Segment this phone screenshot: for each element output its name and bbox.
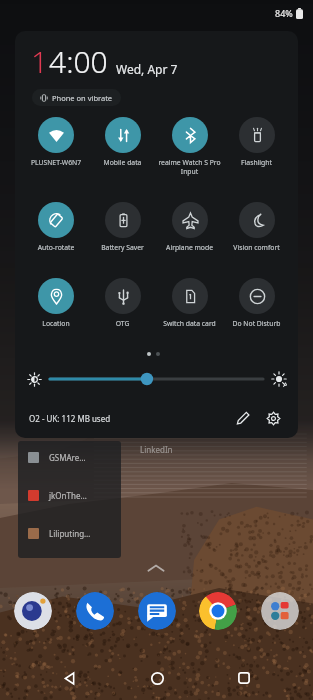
- button[interactable]: GSMAre…: [28, 452, 123, 463]
- staticText: Vision comfort: [223, 243, 290, 252]
- staticText: OTG: [89, 319, 156, 328]
- button[interactable]: jkOnThe…: [28, 490, 123, 501]
- staticText: 1: [31, 41, 49, 82]
- button[interactable]: App: [199, 592, 237, 630]
- staticText: Flashlight: [223, 158, 290, 167]
- staticText: Airplane mode: [156, 243, 223, 252]
- button[interactable]: Phone on vibrate: [31, 88, 122, 107]
- button[interactable]: App: [76, 592, 114, 630]
- staticText: O2 - UK: 112 MB used: [29, 413, 111, 424]
- staticText: PLUSNET-W6N7: [23, 158, 89, 167]
- button[interactable]: PLUSNET-W6N7: [23, 115, 89, 169]
- staticText: Location: [23, 319, 89, 328]
- button[interactable]: Location: [23, 276, 89, 330]
- button[interactable]: Battery Saver: [89, 200, 156, 254]
- staticText: jkOnThe…: [49, 490, 87, 501]
- button[interactable]: realme Watch S Pro: [156, 115, 223, 178]
- staticText: Battery Saver: [89, 243, 156, 252]
- staticText: Mobile data: [89, 158, 156, 167]
- button[interactable]: App: [14, 592, 52, 630]
- button[interactable]: Auto brightness: [269, 369, 289, 389]
- staticText: Auto-rotate: [23, 243, 89, 252]
- button[interactable]: Auto-rotate: [23, 200, 89, 254]
- button[interactable]: App: [138, 592, 176, 630]
- button[interactable]: Settings: [260, 405, 286, 431]
- button[interactable]: OTG: [89, 276, 156, 330]
- button[interactable]: [50, 368, 263, 390]
- button[interactable]: Recent apps: [226, 660, 262, 696]
- staticText: 4:00: [49, 41, 108, 82]
- button[interactable]: Vision comfort: [223, 200, 290, 254]
- button[interactable]: Airplane mode: [156, 200, 223, 254]
- button[interactable]: Back: [51, 660, 87, 696]
- button[interactable]: Switch data card: [156, 276, 223, 330]
- staticText: Liliputing…: [49, 528, 91, 539]
- staticText: 84%: [275, 7, 293, 19]
- staticText: LinkedIn: [140, 444, 173, 455]
- staticText: Input: [156, 167, 223, 176]
- button[interactable]: Edit tiles: [230, 405, 256, 431]
- button[interactable]: Mobile data: [89, 115, 156, 169]
- staticText: realme Watch S Pro: [156, 158, 223, 167]
- button[interactable]: Low brightness: [24, 369, 44, 389]
- button[interactable]: Flashlight: [223, 115, 290, 169]
- button[interactable]: Do Not Disturb: [223, 276, 290, 330]
- button[interactable]: Home: [139, 660, 175, 696]
- staticText: Switch data card: [156, 319, 223, 328]
- staticText: Wed, Apr 7: [116, 61, 178, 77]
- staticText: Phone on vibrate: [52, 93, 113, 103]
- button[interactable]: Liliputing…: [28, 528, 123, 539]
- staticText: Do Not Disturb: [223, 319, 290, 328]
- button[interactable]: App: [261, 592, 299, 630]
- staticText: GSMAre…: [49, 452, 86, 463]
